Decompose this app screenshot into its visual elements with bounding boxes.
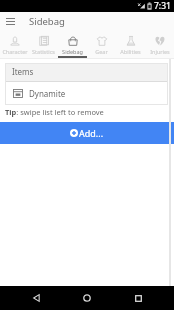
button[interactable]: Add... [0, 122, 174, 144]
staticText: Add... [79, 127, 104, 139]
button[interactable]: Character [0, 31, 29, 58]
button[interactable]: Home [72, 286, 102, 310]
staticText: Dynamite [29, 88, 66, 99]
staticText: Injuries [150, 48, 170, 55]
button[interactable]: Recent apps [123, 286, 153, 310]
button[interactable]: Sidebag [58, 31, 87, 58]
button[interactable]: Dynamite [5, 82, 168, 105]
staticText: Sidebag [62, 48, 83, 55]
staticText: Tip: swipe list left to remove [5, 107, 104, 117]
button[interactable]: Back [21, 286, 51, 310]
staticText: Sidebag [29, 15, 65, 28]
button[interactable]: Abilities [116, 31, 145, 58]
staticText: Items [12, 66, 34, 77]
button[interactable]: Open navigation menu [0, 12, 20, 31]
button[interactable]: Statistics [29, 31, 58, 58]
staticText: Gear [95, 48, 108, 55]
staticText: 7:31 [154, 0, 171, 12]
button[interactable]: Injuries [145, 31, 174, 58]
button[interactable]: Gear [87, 31, 116, 58]
staticText: Abilities [120, 48, 141, 55]
staticText: Character [2, 48, 28, 55]
staticText: Statistics [32, 48, 55, 55]
